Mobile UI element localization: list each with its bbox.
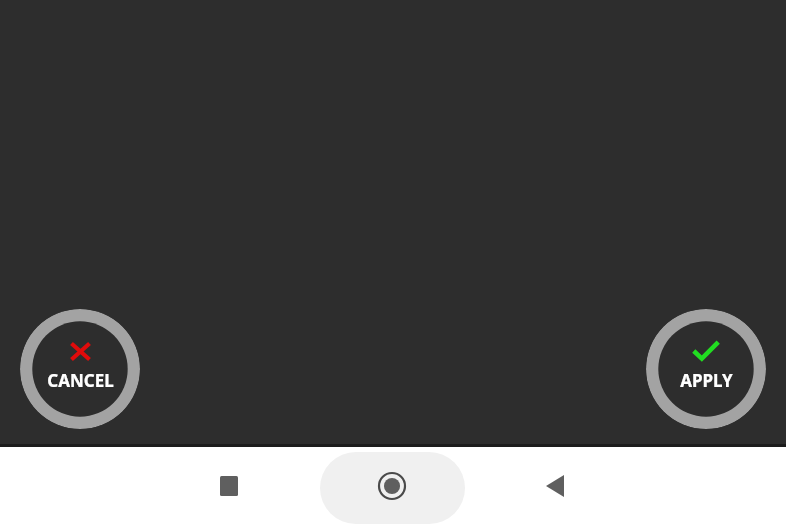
button[interactable]: Home [368, 462, 416, 510]
button[interactable]: CANCEL [20, 309, 140, 429]
staticText: APPLY [680, 369, 733, 392]
staticText: CANCEL [47, 369, 114, 392]
button[interactable]: APPLY [646, 309, 766, 429]
button[interactable]: Recent apps [205, 462, 253, 510]
button[interactable]: Back [531, 462, 579, 510]
